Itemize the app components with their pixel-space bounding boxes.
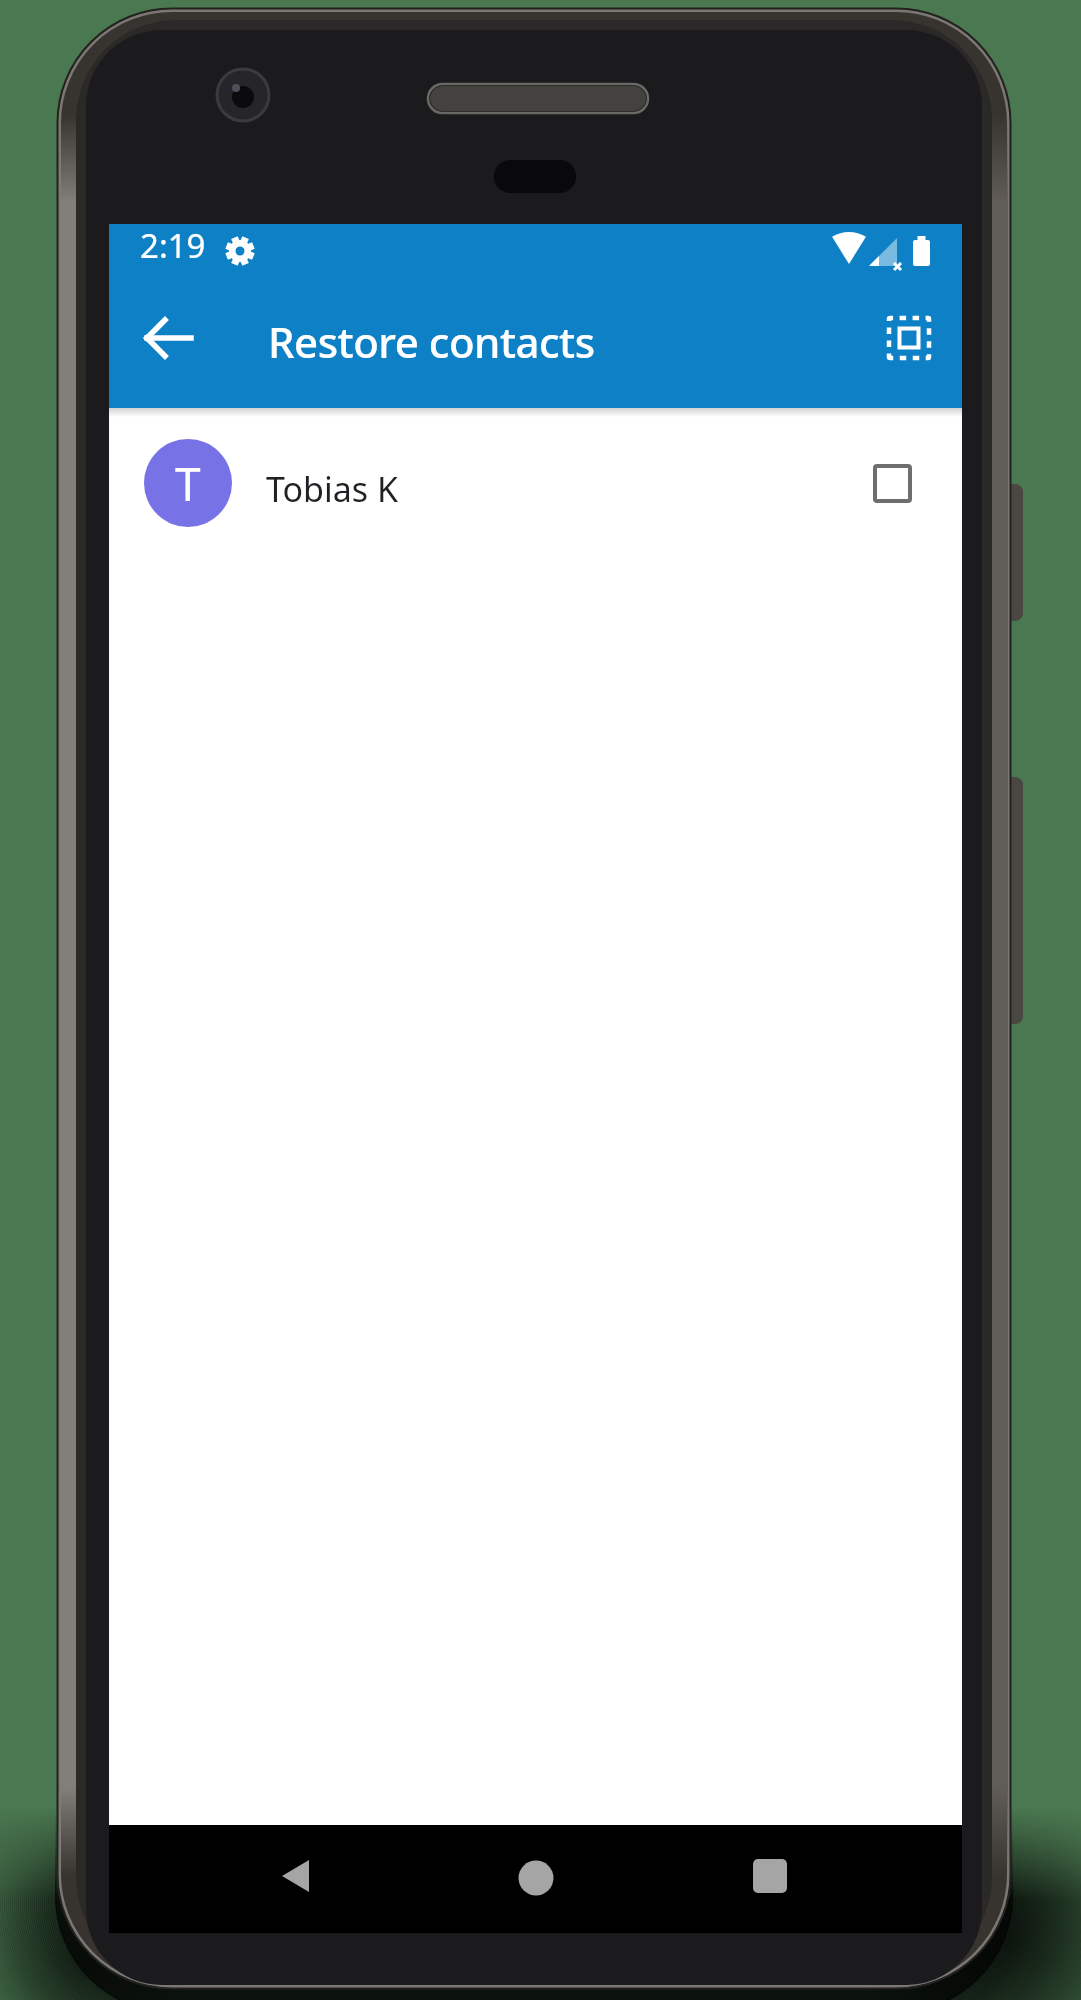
button[interactable] (133, 302, 205, 374)
button[interactable] (500, 1842, 572, 1914)
button[interactable] (263, 1842, 335, 1914)
staticText: T (175, 452, 201, 515)
button[interactable]: T (109, 417, 962, 560)
staticText: Tobias K (266, 466, 399, 512)
button[interactable] (873, 464, 912, 503)
button[interactable] (873, 302, 945, 374)
staticText: Restore contacts (268, 313, 595, 370)
button[interactable] (734, 1840, 806, 1912)
staticText: 2:19 (140, 223, 206, 268)
